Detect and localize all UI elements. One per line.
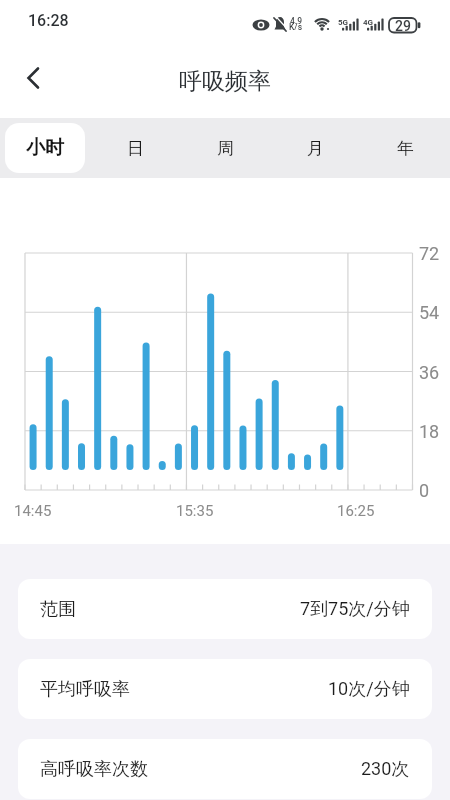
staticText: 日 — [127, 138, 144, 159]
button[interactable] — [14, 58, 54, 98]
staticText: 0 — [419, 480, 430, 501]
staticText: 呼吸频率 — [179, 67, 271, 96]
staticText: 72 — [419, 243, 440, 264]
staticText: 周 — [217, 138, 234, 159]
staticText: 月 — [307, 138, 324, 159]
button[interactable]: 月 — [275, 123, 355, 173]
button[interactable]: 范围 — [18, 579, 432, 639]
staticText: 4G — [363, 18, 374, 27]
staticText: 16:25 — [337, 502, 375, 520]
button[interactable]: 年 — [365, 123, 445, 173]
button[interactable]: 日 — [95, 123, 175, 173]
staticText: 7到75次/分钟 — [300, 598, 410, 621]
staticText: 小时 — [26, 136, 64, 160]
staticText: 36 — [419, 362, 440, 383]
staticText: 29 — [395, 18, 411, 33]
staticText: 15:35 — [176, 502, 214, 520]
button[interactable]: 平均呼吸率 — [18, 659, 432, 719]
staticText: 4.9 — [290, 16, 303, 26]
staticText: 5G — [338, 18, 349, 27]
staticText: 18 — [419, 421, 440, 442]
button[interactable]: 小时 — [5, 123, 85, 173]
staticText: 54 — [419, 302, 440, 323]
staticText: 范围 — [40, 598, 76, 621]
staticText: 年 — [397, 138, 414, 159]
staticText: 高呼吸率次数 — [40, 758, 148, 781]
button[interactable]: 高呼吸率次数 — [18, 739, 432, 799]
button[interactable]: 周 — [185, 123, 265, 173]
staticText: K/s — [289, 22, 303, 32]
staticText: 16:28 — [28, 11, 69, 30]
staticText: 平均呼吸率 — [40, 678, 130, 701]
staticText: 10次/分钟 — [328, 678, 410, 701]
staticText: 14:45 — [14, 502, 52, 520]
staticText: 230次 — [361, 758, 410, 781]
